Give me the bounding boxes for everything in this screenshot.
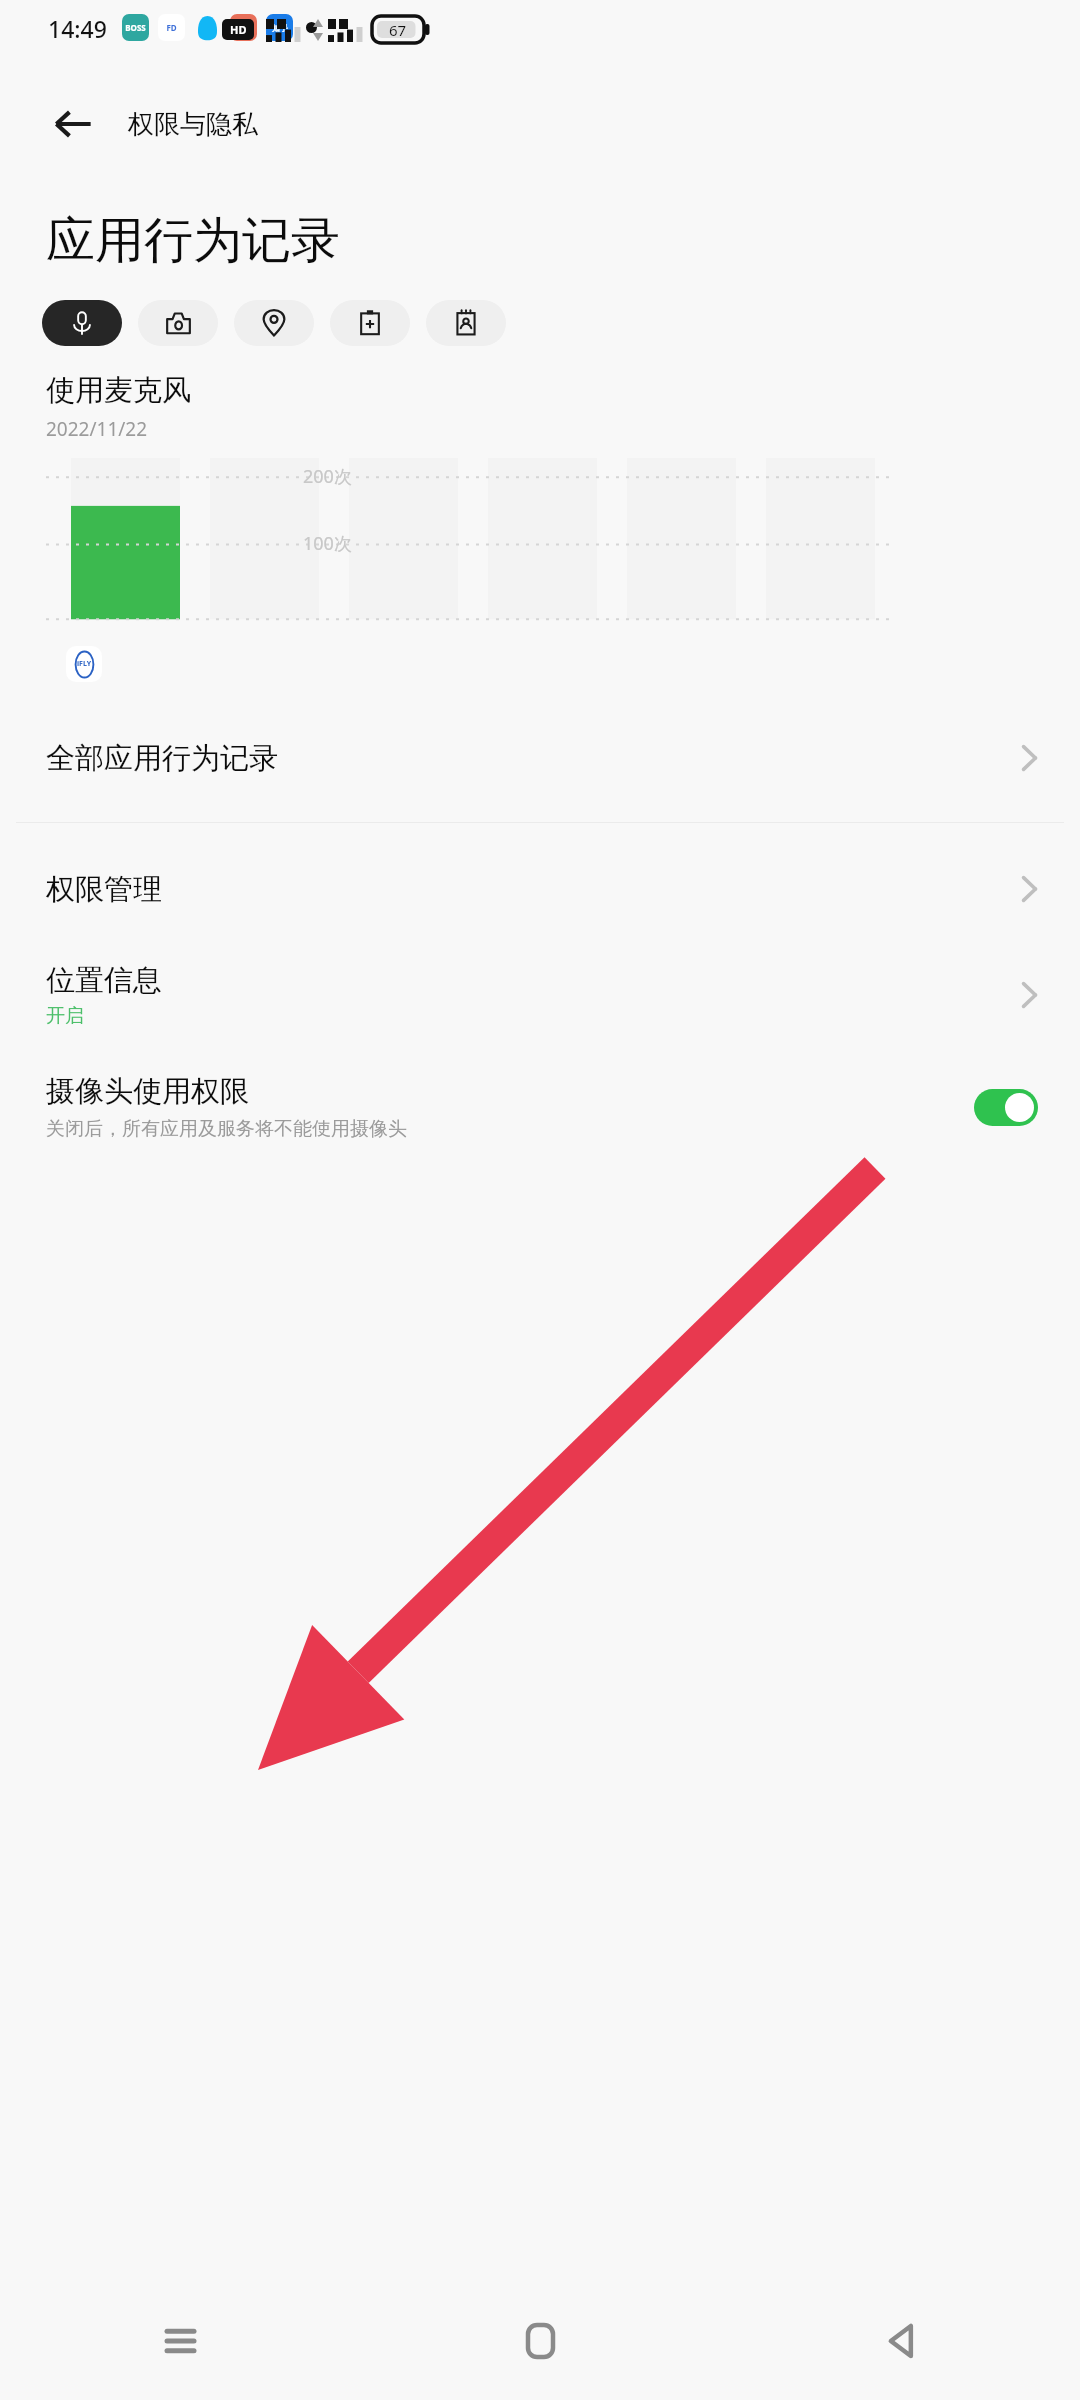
button[interactable]: Camera filter [138, 300, 218, 346]
button[interactable]: Back [720, 2282, 1080, 2400]
button[interactable]: 摄像头使用权限 [0, 1051, 1080, 1163]
staticText: 使用麦克风 [46, 372, 191, 409]
staticText: G [241, 22, 247, 33]
staticText: 14:49 [48, 13, 107, 44]
button[interactable]: Contacts filter [426, 300, 506, 346]
staticText: 开启 [46, 1004, 84, 1028]
staticText: 200次 [303, 464, 352, 489]
staticText: HD [230, 22, 247, 37]
staticText: 2022/11/22 [46, 416, 148, 442]
button[interactable]: Home [360, 2282, 720, 2400]
staticText: 67 [389, 20, 407, 40]
button[interactable]: 位置信息 [0, 945, 1080, 1045]
staticText: 位置信息 [46, 962, 162, 999]
staticText: FD [166, 22, 177, 33]
staticText: 权限管理 [46, 871, 162, 908]
staticText: 全部应用行为记录 [46, 740, 278, 777]
staticText: BOSS [125, 22, 146, 33]
staticText: 知乎 [272, 23, 288, 33]
staticText: 100次 [303, 531, 352, 556]
button[interactable]: Back [44, 95, 102, 153]
staticText: 摄像头使用权限 [46, 1073, 249, 1110]
button[interactable]: Location filter [234, 300, 314, 346]
staticText: 权限与隐私 [128, 108, 258, 141]
button[interactable]: 全部应用行为记录 [0, 708, 1080, 808]
button[interactable]: Microphone filter [42, 300, 122, 346]
staticText: iFLY [77, 659, 92, 669]
button[interactable]: Camera permission toggle, on [974, 1089, 1038, 1126]
button[interactable]: Recent apps [0, 2282, 360, 2400]
staticText: 关闭后，所有应用及服务将不能使用摄像头 [46, 1117, 407, 1141]
staticText: 应用行为记录 [46, 210, 340, 272]
button[interactable]: iFLYTEK app [66, 646, 102, 682]
button[interactable]: 权限管理 [0, 839, 1080, 939]
button[interactable]: Clipboard filter [330, 300, 410, 346]
